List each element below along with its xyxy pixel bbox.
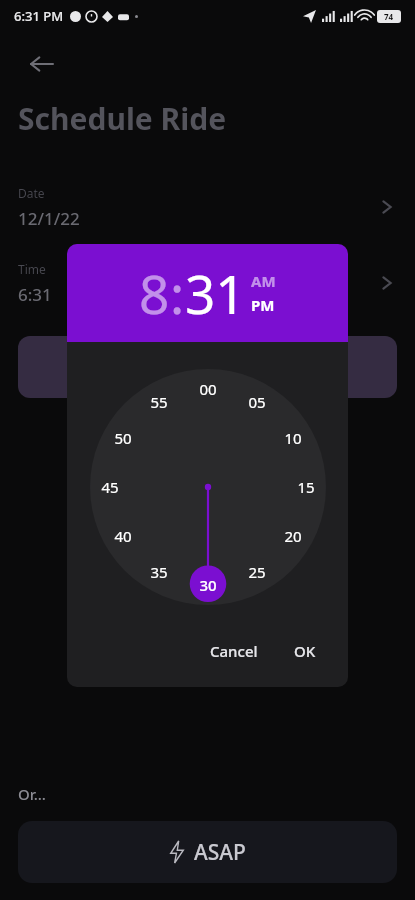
staticText: OK [294,641,316,661]
staticText: 45 [101,477,119,497]
button[interactable]: Back [22,44,62,84]
staticText: Cancel [210,641,258,661]
staticText: Or... [18,784,46,804]
staticText: ASAP [194,838,246,867]
button[interactable]: 8 [139,257,170,329]
button[interactable]: Time [0,252,415,314]
staticText: Date [18,185,45,201]
staticText: 15 [297,477,315,497]
staticText: 05 [248,392,266,412]
staticText: 10 [284,428,302,448]
button[interactable]: PM [251,295,275,315]
staticText: 25 [248,562,266,582]
staticText: 40 [114,526,132,546]
staticText: 55 [150,392,168,412]
staticText: 12/1/22 [18,207,80,230]
button[interactable]: 35 [144,557,174,587]
button[interactable]: 10 [278,423,308,453]
button[interactable]: 30 [193,570,223,600]
staticText: 6:31 PM [14,7,64,25]
button[interactable]: 50 [108,423,138,453]
button[interactable]: 25 [242,557,272,587]
staticText: 30 [199,575,217,595]
button[interactable]: 31 [185,257,246,329]
button[interactable]: 15 [291,472,321,502]
staticText: : [170,257,185,329]
button[interactable]: 00 [193,374,223,404]
staticText: 20 [284,526,302,546]
button[interactable]: 20 [278,521,308,551]
button[interactable]: ASAP [18,821,397,883]
button[interactable]: Cancel [198,633,270,669]
staticText: 6:31 [18,283,52,306]
button[interactable]: OK [282,633,328,669]
button[interactable]: 05 [242,387,272,417]
staticText: Schedule Ride [18,98,227,139]
staticText: Time [18,261,46,277]
button[interactable]: Date [0,176,415,238]
staticText: 00 [199,379,217,399]
button[interactable] [18,336,397,398]
staticText: 74 [384,11,394,22]
staticText: 50 [114,428,132,448]
button[interactable]: 40 [108,521,138,551]
button[interactable]: 55 [144,387,174,417]
button[interactable]: AM [251,271,276,291]
staticText: 35 [150,562,168,582]
button[interactable]: 45 [95,472,125,502]
